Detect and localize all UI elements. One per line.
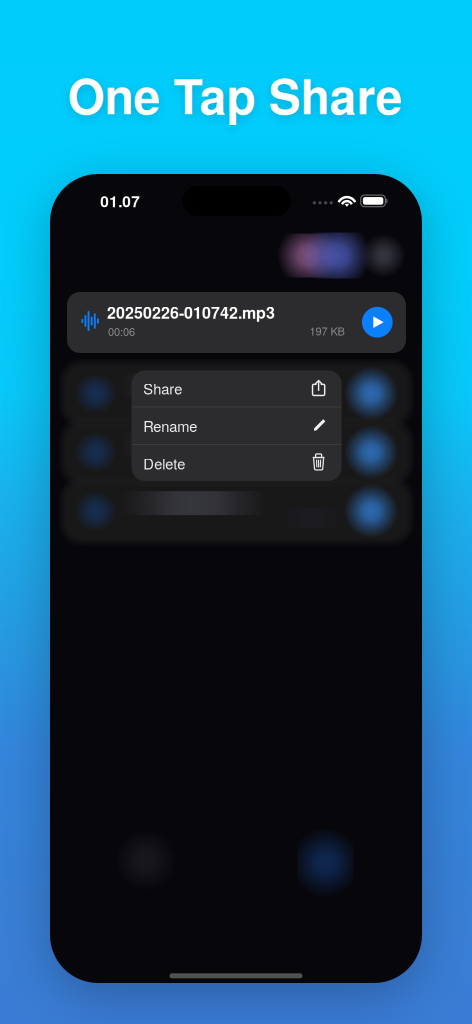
staticText: One Tap Share xyxy=(67,60,402,129)
staticText: Share xyxy=(143,378,182,399)
staticText: 01.07 xyxy=(100,190,140,212)
button[interactable]: 20250226-010742.mp3 xyxy=(67,292,406,353)
button[interactable]: Delete xyxy=(132,445,342,482)
staticText: 20250226-010742.mp3 xyxy=(107,301,275,324)
staticText: Delete xyxy=(143,453,185,474)
staticText: Rename xyxy=(143,415,197,436)
button[interactable]: Share xyxy=(132,370,342,407)
staticText: 00:06 xyxy=(108,323,135,339)
button[interactable]: Rename xyxy=(132,407,342,444)
staticText: 197 KB xyxy=(309,323,344,338)
